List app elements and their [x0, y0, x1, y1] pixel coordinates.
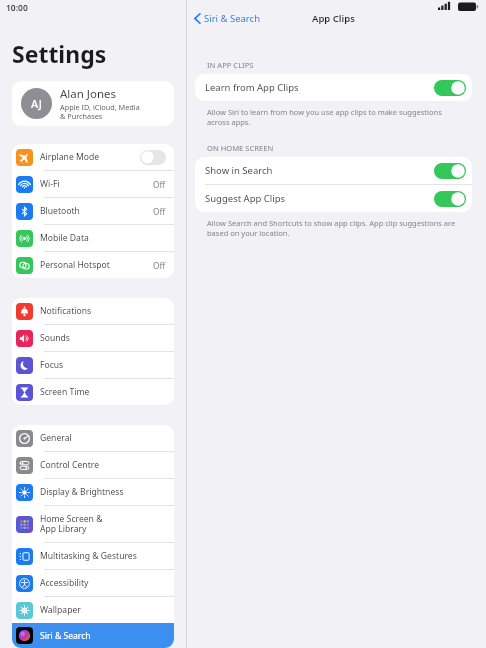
button[interactable]: Wallpaper: [12, 597, 174, 623]
staticText: Wi-Fi: [40, 178, 60, 190]
staticText: Suggest App Clips: [205, 192, 286, 205]
staticText: Learn from App Clips: [205, 81, 299, 94]
staticText: Allow Search and Shortcuts to show app c…: [207, 218, 456, 238]
button[interactable]: Siri & Search: [12, 623, 174, 648]
button[interactable]: General: [12, 425, 174, 451]
staticText: AJ: [31, 96, 42, 111]
staticText: Alan Jones: [60, 86, 117, 102]
staticText: Control Centre: [40, 459, 99, 471]
button[interactable]: Learn from App Clips: [195, 74, 472, 101]
staticText: Home Screen & App Library: [40, 513, 103, 535]
button[interactable]: Off: [140, 150, 166, 165]
button[interactable]: Mobile Data: [12, 225, 174, 251]
button[interactable]: Airplane Mode: [12, 144, 174, 170]
staticText: Airplane Mode: [40, 151, 100, 163]
button[interactable]: Screen Time: [12, 379, 174, 405]
staticText: General: [40, 432, 72, 444]
button[interactable]: AJ: [12, 81, 174, 126]
staticText: Settings: [12, 38, 107, 69]
button[interactable]: Wi-Fi: [12, 171, 174, 197]
staticText: Siri & Search: [40, 630, 91, 642]
button[interactable]: Sounds: [12, 325, 174, 351]
staticText: Focus: [40, 359, 64, 371]
staticText: Multitasking & Gestures: [40, 550, 137, 562]
button[interactable]: On: [434, 163, 466, 179]
button[interactable]: Personal Hotspot: [12, 252, 174, 278]
staticText: Show in Search: [205, 164, 273, 177]
button[interactable]: Accessibility: [12, 570, 174, 596]
staticText: Off: [153, 179, 166, 190]
staticText: Siri & Search: [204, 12, 261, 25]
staticText: ON HOME SCREEN: [207, 143, 274, 153]
staticText: Personal Hotspot: [40, 259, 110, 271]
button[interactable]: On: [434, 80, 466, 96]
staticText: Allow Siri to learn from how you use app…: [207, 107, 442, 127]
staticText: Off: [153, 260, 166, 271]
staticText: Sounds: [40, 332, 70, 344]
staticText: App Clips: [312, 12, 355, 25]
staticText: Apple ID, iCloud, Media & Purchases: [60, 102, 140, 122]
staticText: 10:00: [6, 2, 28, 14]
staticText: IN APP CLIPS: [207, 60, 254, 70]
staticText: Off: [153, 206, 166, 217]
staticText: Display & Brightness: [40, 486, 124, 498]
staticText: Accessibility: [40, 577, 89, 589]
staticText: Notifications: [40, 305, 92, 317]
button[interactable]: Home Screen & App Library: [12, 506, 174, 542]
staticText: Screen Time: [40, 386, 90, 398]
staticText: Mobile Data: [40, 232, 89, 244]
button[interactable]: Display & Brightness: [12, 479, 174, 505]
button[interactable]: Control Centre: [12, 452, 174, 478]
button[interactable]: Focus: [12, 352, 174, 378]
button[interactable]: Notifications: [12, 298, 174, 324]
button[interactable]: Bluetooth: [12, 198, 174, 224]
button[interactable]: Siri & Search: [191, 9, 264, 28]
button[interactable]: On: [434, 191, 466, 207]
staticText: Bluetooth: [40, 205, 80, 217]
button[interactable]: Suggest App Clips: [195, 185, 472, 212]
button[interactable]: Show in Search: [195, 157, 472, 184]
button[interactable]: Multitasking & Gestures: [12, 543, 174, 569]
staticText: Wallpaper: [40, 604, 81, 616]
